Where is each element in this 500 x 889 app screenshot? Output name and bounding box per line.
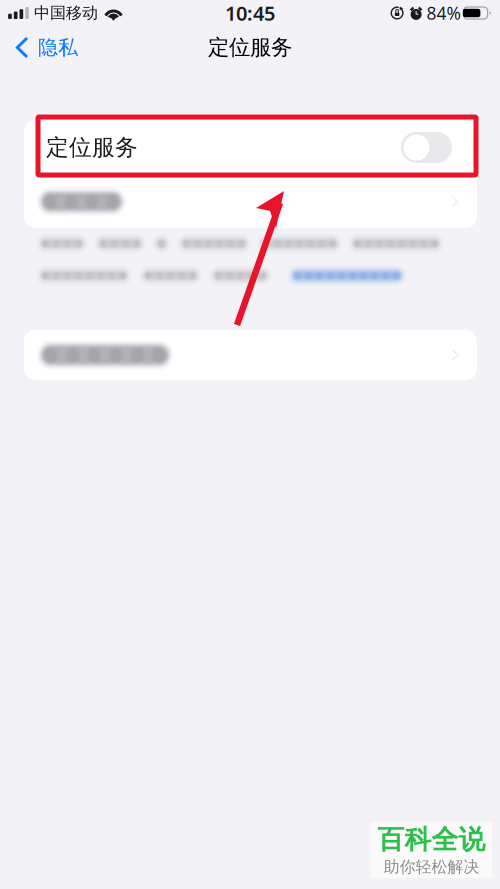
staticText: 84%	[427, 1, 461, 24]
staticText: 定位服务	[46, 134, 138, 161]
staticText: 隐私	[38, 35, 78, 60]
staticText: 中国移动	[34, 3, 98, 23]
staticText: 10:45	[225, 0, 275, 26]
button[interactable]: 隐私	[0, 29, 88, 66]
staticText: 百科全说	[377, 823, 485, 856]
button[interactable]: 定位服务	[24, 120, 477, 175]
button[interactable]	[24, 176, 477, 228]
button[interactable]	[24, 330, 477, 380]
staticText: 助你轻松解决	[383, 857, 479, 877]
staticText: 定位服务	[208, 34, 292, 61]
